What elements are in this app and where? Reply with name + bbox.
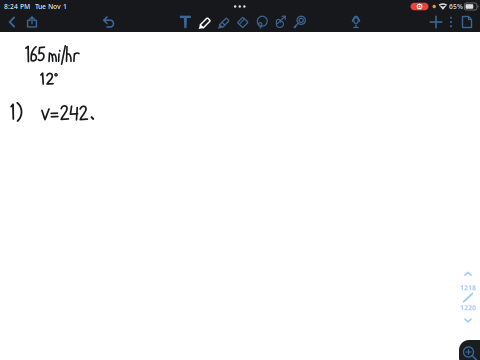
- button[interactable]: Highlighter tool: [217, 13, 231, 31]
- button[interactable]: Previous page: [458, 269, 478, 278]
- staticText: 1220: [460, 303, 476, 312]
- button[interactable]: Next page: [458, 316, 478, 325]
- button[interactable]: Add: [427, 13, 445, 31]
- button[interactable]: More options: [445, 13, 457, 31]
- button[interactable]: Back: [2, 13, 22, 31]
- button[interactable]: Text tool: [178, 13, 192, 31]
- staticText: 1218: [460, 283, 476, 292]
- button[interactable]: Page browser: [459, 13, 475, 31]
- button[interactable]: Undo: [99, 13, 119, 31]
- button[interactable]: Share: [22, 13, 42, 31]
- button[interactable]: Eraser tool: [236, 13, 250, 31]
- staticText: 65%: [449, 2, 463, 11]
- staticText: 8:24 PM: [4, 2, 30, 11]
- button[interactable]: Zoom: [459, 340, 480, 360]
- button[interactable]: Microphone: [346, 13, 366, 31]
- button[interactable]: Hand tool: [274, 13, 288, 31]
- button[interactable]: Lasso tool: [255, 13, 269, 31]
- button[interactable]: Zoom tool: [294, 13, 308, 31]
- staticText: Tue Nov 1: [35, 2, 67, 11]
- button[interactable]: Pen tool: [198, 13, 212, 31]
